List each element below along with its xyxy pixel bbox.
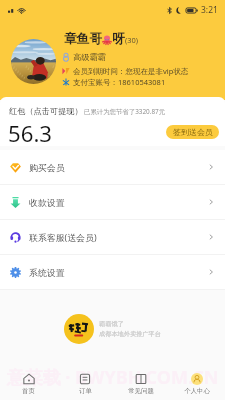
button[interactable]: 红包（点击可提现）	[0, 97, 225, 146]
button[interactable]: 常见问题	[113, 373, 169, 395]
button[interactable]: 首页	[0, 373, 57, 395]
staticText: 3:21	[201, 4, 218, 16]
staticText: (30)	[125, 35, 139, 45]
staticText: 高级霸霸	[73, 52, 106, 62]
staticText: 红包（点击可提现）	[9, 106, 83, 116]
staticText: 章鱼哥	[64, 31, 102, 47]
staticText: 个人中心	[184, 387, 210, 395]
staticText: 霸霸饿了	[99, 320, 124, 328]
staticText: 首页	[22, 387, 35, 395]
button[interactable]: 购买会员	[0, 150, 225, 184]
button[interactable]: 个人中心	[169, 373, 225, 395]
staticText: 已累计为您节省了3320.87元	[84, 107, 166, 116]
staticText: 系统设置	[29, 267, 65, 278]
staticText: 呀	[112, 31, 125, 47]
staticText: 联系客服(送会员)	[29, 231, 97, 243]
staticText: 收款设置	[29, 197, 65, 208]
staticText: 成都本地外卖推广平台	[99, 330, 161, 338]
button[interactable]: 签到送会员	[166, 125, 219, 139]
button[interactable]: Profile photo	[11, 39, 56, 84]
staticText: 支付宝账号：18610543081	[73, 77, 166, 87]
staticText: 订单	[79, 387, 92, 395]
button[interactable]: 订单	[57, 373, 113, 395]
button[interactable]: 收款设置	[0, 185, 225, 219]
staticText: 签到送会员	[173, 127, 213, 137]
button[interactable]: 系统设置	[0, 255, 225, 289]
staticText: 会员到期时间：您现在是非vip状态	[73, 66, 189, 76]
staticText: 意菜载 · BWYBH.COM.CN	[0, 365, 225, 390]
staticText: 购买会员	[29, 162, 65, 173]
button[interactable]: 联系客服(送会员)	[0, 220, 225, 254]
staticText: 56.3	[8, 118, 53, 146]
staticText: 常见问题	[128, 387, 154, 395]
